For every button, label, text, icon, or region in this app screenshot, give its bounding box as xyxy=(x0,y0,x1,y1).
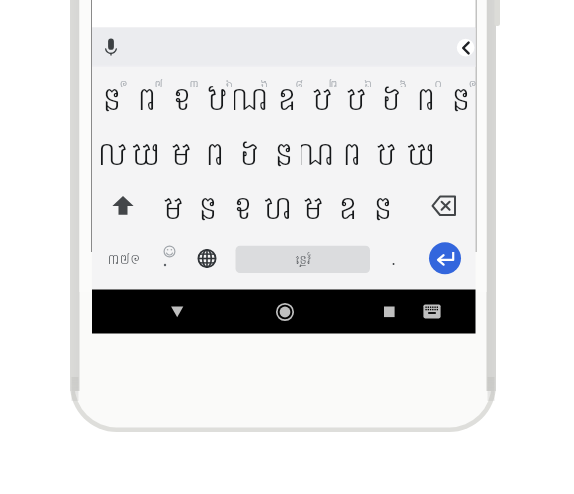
staticText: ១ xyxy=(119,75,128,87)
button[interactable]: ព xyxy=(335,125,369,179)
staticText: ម xyxy=(171,125,191,179)
button[interactable]: ល xyxy=(260,179,295,233)
button[interactable]: More xyxy=(451,32,475,62)
button[interactable]: យ xyxy=(129,125,163,179)
staticText: ៩ xyxy=(399,75,407,87)
staticText: ថ xyxy=(381,70,401,124)
staticText: . xyxy=(391,248,396,269)
button[interactable]: ប xyxy=(338,70,373,124)
staticText: ន xyxy=(338,179,358,233)
button[interactable]: ប xyxy=(369,125,403,179)
staticText: ម xyxy=(303,179,323,233)
staticText: ថ xyxy=(239,125,259,179)
button[interactable]: Switch keyboard xyxy=(414,290,451,333)
button[interactable]: Recent apps xyxy=(369,290,410,333)
staticText: យ xyxy=(406,125,436,179)
button[interactable]: Home xyxy=(264,290,306,333)
button[interactable]: ឌ xyxy=(190,179,225,233)
staticText: ខ្មែរ xyxy=(295,248,311,271)
staticText: ឌ xyxy=(198,179,218,233)
staticText: ឌ xyxy=(274,125,294,179)
button[interactable]: យ xyxy=(404,125,438,179)
staticText: ៨ xyxy=(364,75,372,87)
staticText: ប xyxy=(376,125,396,179)
button[interactable]: ខ្មែរ xyxy=(235,246,370,273)
staticText: ៤ xyxy=(225,75,233,87)
button[interactable]: ព xyxy=(198,125,232,179)
staticText: ទ xyxy=(233,179,253,233)
button[interactable]: Shift xyxy=(96,183,149,229)
staticText: ព xyxy=(416,70,436,124)
staticText: ណ xyxy=(234,70,269,124)
button[interactable]: ឋ xyxy=(199,70,234,124)
staticText: ព xyxy=(137,70,157,124)
staticText: ១២៣ xyxy=(107,247,141,272)
staticText: ឌ xyxy=(451,70,471,124)
button[interactable]: ថ xyxy=(373,70,408,124)
button[interactable]: ប xyxy=(304,70,339,124)
button[interactable]: ទ xyxy=(225,179,260,233)
button[interactable]: ព xyxy=(129,70,164,124)
staticText: ៣ xyxy=(189,75,199,87)
button[interactable]: Voice input xyxy=(96,30,126,64)
staticText: ឌ xyxy=(373,179,393,233)
button[interactable]: ឌ xyxy=(443,70,478,124)
staticText: យ xyxy=(131,125,161,179)
button[interactable]: ណ xyxy=(234,70,269,124)
staticText: ឋ xyxy=(207,70,227,124)
staticText: ៦ xyxy=(295,75,303,87)
staticText: ល xyxy=(263,179,293,233)
staticText: ណ xyxy=(301,125,335,179)
button[interactable]: Back xyxy=(157,290,199,333)
staticText: ១ xyxy=(468,75,477,87)
staticText: ម xyxy=(163,179,183,233)
staticText: ប xyxy=(346,70,366,124)
staticText: ៧ xyxy=(328,75,338,87)
staticText: ព xyxy=(205,125,225,179)
button[interactable]: ម xyxy=(155,179,190,233)
staticText: ឌ xyxy=(102,70,122,124)
button[interactable]: Enter xyxy=(427,240,463,276)
staticText: ហ xyxy=(97,125,127,179)
button[interactable]: ឌ xyxy=(267,125,301,179)
button[interactable]: ហ xyxy=(95,125,129,179)
staticText: ២ xyxy=(154,75,163,87)
staticText: ៥ xyxy=(260,75,268,87)
button[interactable]: . xyxy=(381,244,405,272)
button[interactable]: Emoji xyxy=(153,240,186,278)
button[interactable]: ន xyxy=(330,179,365,233)
staticText: ០ xyxy=(434,75,442,87)
button[interactable]: ព xyxy=(408,70,443,124)
staticText: ទ xyxy=(172,70,192,124)
button[interactable]: ណ xyxy=(301,125,335,179)
button[interactable]: ម xyxy=(164,125,198,179)
button[interactable]: Change language xyxy=(190,240,224,278)
button[interactable]: ថ xyxy=(232,125,266,179)
button[interactable]: ឌ xyxy=(365,179,400,233)
staticText: ន xyxy=(277,70,297,124)
button[interactable]: Backspace xyxy=(418,183,475,229)
staticText: ព xyxy=(342,125,362,179)
button[interactable]: ឌ xyxy=(94,70,129,124)
button[interactable]: ទ xyxy=(164,70,199,124)
staticText: ប xyxy=(312,70,332,124)
button[interactable]: ១២៣ xyxy=(105,245,143,273)
button[interactable]: ន xyxy=(269,70,304,124)
button[interactable]: ម xyxy=(295,179,330,233)
